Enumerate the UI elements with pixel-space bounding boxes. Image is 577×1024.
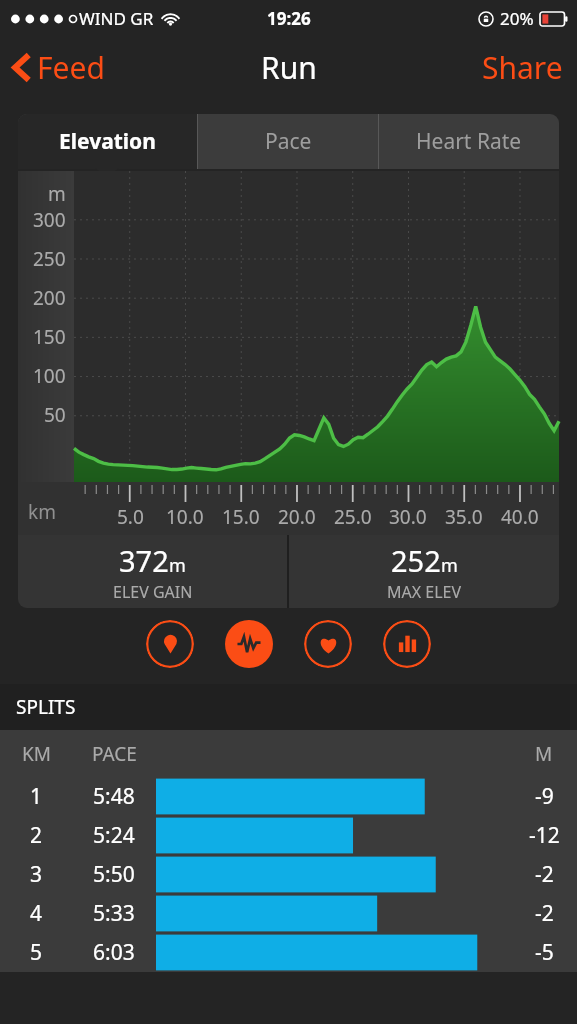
button[interactable]: 2 <box>0 816 577 855</box>
staticText: 2 <box>30 821 43 850</box>
staticText: m <box>48 181 66 207</box>
button[interactable]: Share <box>468 38 577 97</box>
staticText: 5 <box>30 938 43 967</box>
staticText: 3 <box>30 860 43 889</box>
staticText: m <box>169 553 186 578</box>
button[interactable]: Splits <box>383 620 431 668</box>
staticText: 150 <box>33 324 66 350</box>
staticText: m <box>441 553 458 578</box>
staticText: 20% <box>500 7 534 30</box>
button[interactable]: Pace <box>198 114 378 169</box>
staticText: MAX ELEV <box>387 581 462 603</box>
button[interactable]: Map <box>146 620 194 668</box>
button[interactable]: Elevation <box>18 114 197 169</box>
staticText: 5:50 <box>93 860 135 889</box>
staticText: 4 <box>30 899 43 928</box>
button[interactable]: 3 <box>0 855 577 894</box>
staticText: KM <box>22 741 51 767</box>
button[interactable]: 252 <box>289 535 559 608</box>
staticText: Feed <box>37 47 105 88</box>
staticText: 5:48 <box>93 782 135 811</box>
staticText: 372 <box>119 541 169 580</box>
button[interactable]: 372 <box>18 535 287 608</box>
staticText: 252 <box>391 541 441 580</box>
button[interactable]: Feed <box>0 39 119 96</box>
staticText: WIND GR <box>79 7 154 30</box>
staticText: 30.0 <box>389 504 427 530</box>
staticText: 5:24 <box>93 821 135 850</box>
staticText: 300 <box>33 207 66 233</box>
staticText: 250 <box>33 246 66 272</box>
staticText: 6:03 <box>93 938 135 967</box>
staticText: Share <box>482 47 563 88</box>
staticText: PACE <box>92 741 137 767</box>
staticText: km <box>28 499 56 525</box>
staticText: ELEV GAIN <box>113 581 193 603</box>
staticText: 25.0 <box>334 504 372 530</box>
staticText: 1 <box>30 782 43 811</box>
staticText: 19:26 <box>267 7 311 30</box>
staticText: Heart Rate <box>416 127 522 156</box>
staticText: SPLITS <box>16 694 76 720</box>
staticText: -2 <box>535 860 554 889</box>
button[interactable]: 5 <box>0 933 577 972</box>
staticText: 15.0 <box>222 504 260 530</box>
staticText: 200 <box>33 285 66 311</box>
staticText: -9 <box>535 782 554 811</box>
staticText: Run <box>261 47 317 88</box>
staticText: 50 <box>44 402 66 428</box>
staticText: 40.0 <box>501 504 539 530</box>
staticText: 5.0 <box>117 504 144 530</box>
staticText: 35.0 <box>445 504 483 530</box>
button[interactable]: 1 <box>0 777 577 816</box>
button[interactable]: Heart rate <box>304 620 352 668</box>
staticText: 10.0 <box>166 504 204 530</box>
staticText: 100 <box>33 363 66 389</box>
button[interactable]: Elevation <box>225 620 273 668</box>
staticText: -2 <box>535 899 554 928</box>
staticText: 20.0 <box>278 504 316 530</box>
staticText: Pace <box>265 127 312 156</box>
button[interactable]: Heart Rate <box>379 114 559 169</box>
staticText: M <box>535 741 553 767</box>
staticText: Elevation <box>59 127 156 156</box>
button[interactable]: 4 <box>0 894 577 933</box>
staticText: 5:33 <box>93 899 135 928</box>
staticText: -12 <box>529 821 560 850</box>
staticText: -5 <box>535 938 554 967</box>
